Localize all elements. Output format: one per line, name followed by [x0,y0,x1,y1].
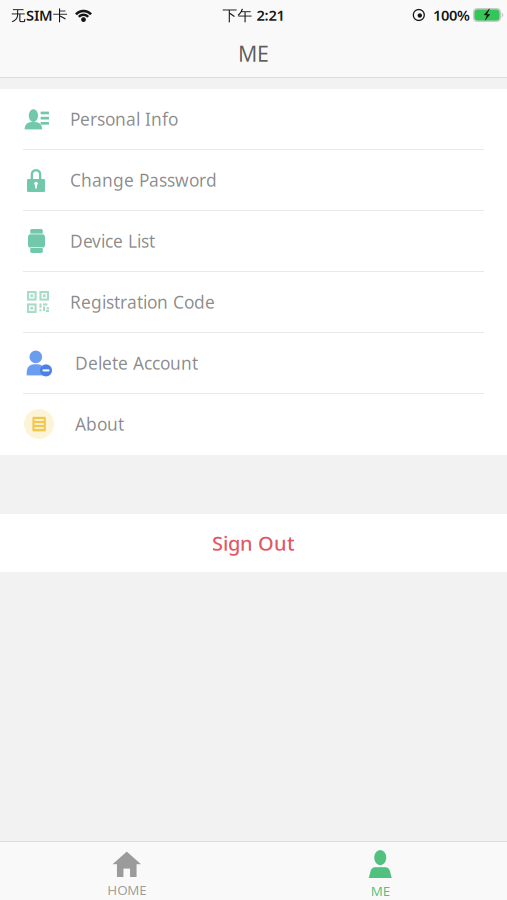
button[interactable]: Change Password [0,150,507,210]
staticText: 无SIM卡 [11,5,68,25]
staticText: Device List [70,229,155,252]
staticText: Personal Info [70,107,178,130]
button[interactable]: Registration Code [0,272,507,332]
button[interactable]: About [0,394,507,454]
staticText: Sign Out [212,530,295,556]
button[interactable]: Sign Out [0,514,507,572]
staticText: Change Password [70,168,217,191]
staticText: HOME [107,881,146,899]
staticText: 下午 2:21 [222,5,284,25]
button[interactable]: Delete Account [0,333,507,393]
staticText: ME [371,882,390,900]
staticText: Registration Code [70,290,215,313]
staticText: Delete Account [75,351,198,374]
staticText: ME [238,39,269,68]
button[interactable]: HOME [0,842,253,900]
button[interactable]: Device List [0,211,507,271]
button[interactable]: ME [253,842,507,900]
staticText: About [75,412,124,435]
button[interactable]: Personal Info [0,89,507,149]
staticText: 100% [433,5,470,25]
